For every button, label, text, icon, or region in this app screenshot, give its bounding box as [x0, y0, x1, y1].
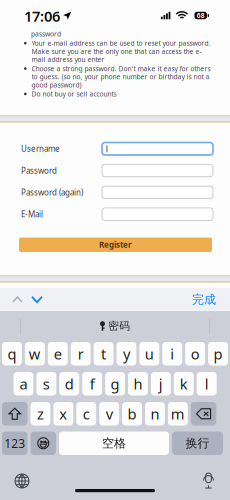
- button[interactable]: w: [25, 342, 45, 365]
- button[interactable]: q: [2, 342, 22, 365]
- staticText: g: [110, 374, 119, 393]
- staticText: i: [170, 344, 174, 363]
- button[interactable]: o: [185, 342, 205, 365]
- staticText: Username: [21, 143, 60, 154]
- staticText: l: [205, 374, 209, 393]
- staticText: j: [159, 374, 163, 393]
- button[interactable]: l: [197, 372, 217, 395]
- staticText: x: [59, 404, 67, 423]
- staticText: n: [150, 404, 159, 423]
- button[interactable]: e: [48, 342, 68, 365]
- staticText: 换行: [185, 436, 209, 451]
- staticText: m: [171, 404, 185, 423]
- staticText: Password (again): [21, 187, 83, 198]
- button[interactable]: n: [145, 402, 165, 425]
- staticText: z: [37, 404, 44, 423]
- button[interactable]: u: [139, 342, 159, 365]
- button[interactable]: [102, 164, 213, 177]
- button[interactable]: [102, 208, 213, 220]
- staticText: q: [7, 344, 16, 363]
- button[interactable]: b: [122, 402, 142, 425]
- button[interactable]: h: [128, 372, 148, 395]
- staticText: f: [90, 374, 95, 393]
- button[interactable]: y: [116, 342, 136, 365]
- staticText: Choose a strong password. Don't make it …: [31, 64, 210, 89]
- button[interactable]: k: [174, 372, 194, 395]
- staticText: Do not buy or sell accounts: [31, 89, 116, 98]
- staticText: Register: [99, 239, 132, 250]
- button[interactable]: f: [82, 372, 102, 395]
- staticText: Your e-mail address can be used to reset…: [31, 39, 210, 64]
- button[interactable]: [102, 142, 213, 155]
- button[interactable]: s: [36, 372, 56, 395]
- staticText: b: [127, 404, 136, 423]
- staticText: e: [54, 344, 62, 363]
- staticText: 17:06: [24, 6, 60, 26]
- staticText: v: [106, 404, 113, 423]
- button[interactable]: g: [105, 372, 125, 395]
- button[interactable]: m: [168, 402, 188, 425]
- button[interactable]: r: [71, 342, 91, 365]
- button[interactable]: Register: [19, 237, 212, 252]
- staticText: 完成: [192, 292, 216, 307]
- button[interactable]: 完成: [188, 288, 220, 311]
- staticText: k: [180, 374, 188, 393]
- button[interactable]: 空格: [59, 431, 169, 455]
- button[interactable]: Next field: [27, 292, 47, 307]
- button[interactable]: Emoji: [30, 431, 56, 455]
- button[interactable]: i: [162, 342, 182, 365]
- staticText: r: [78, 344, 84, 363]
- button[interactable]: 123: [2, 431, 27, 455]
- button[interactable]: 换行: [172, 431, 223, 455]
- button[interactable]: x: [53, 402, 73, 425]
- staticText: Password: [21, 165, 57, 176]
- button[interactable]: z: [30, 402, 50, 425]
- staticText: t: [101, 344, 106, 363]
- button[interactable]: Previous field: [8, 292, 27, 307]
- button[interactable]: d: [59, 372, 79, 395]
- staticText: c: [83, 404, 90, 423]
- button[interactable]: [102, 186, 213, 199]
- button[interactable]: Delete: [191, 402, 216, 425]
- staticText: u: [145, 344, 154, 363]
- button[interactable]: a: [13, 372, 33, 395]
- staticText: y: [123, 344, 130, 363]
- button[interactable]: Switch keyboard: [10, 469, 34, 493]
- staticText: 密码: [108, 319, 130, 332]
- staticText: d: [65, 374, 74, 393]
- button[interactable]: Dictation: [198, 468, 219, 493]
- button[interactable]: Shift: [2, 402, 27, 425]
- button[interactable]: t: [94, 342, 113, 365]
- staticText: 123: [4, 435, 25, 451]
- staticText: h: [133, 374, 142, 393]
- button[interactable]: p: [208, 342, 228, 365]
- staticText: w: [29, 344, 41, 363]
- staticText: o: [191, 344, 200, 363]
- staticText: 空格: [102, 436, 126, 451]
- staticText: E-Mail: [21, 209, 43, 219]
- staticText: password: [31, 29, 61, 38]
- button[interactable]: j: [151, 372, 171, 395]
- staticText: p: [214, 344, 223, 363]
- button[interactable]: c: [76, 402, 96, 425]
- staticText: 68: [197, 11, 205, 20]
- staticText: s: [43, 374, 50, 393]
- button[interactable]: v: [99, 402, 119, 425]
- staticText: a: [19, 374, 27, 393]
